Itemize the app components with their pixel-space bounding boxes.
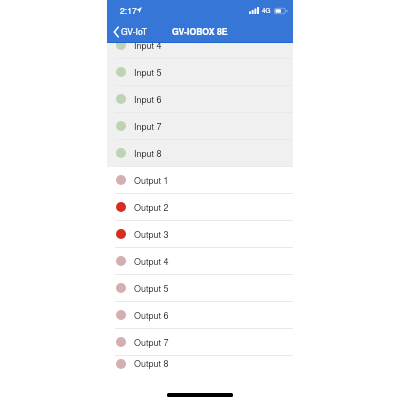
button[interactable]: Input 7 xyxy=(107,113,293,140)
button[interactable]: Output 5 xyxy=(107,275,293,302)
staticText: Output 7 xyxy=(134,336,169,349)
staticText: Output 6 xyxy=(134,309,169,322)
button[interactable]: Output 8 xyxy=(107,356,293,371)
staticText: Input 4 xyxy=(134,43,162,52)
staticText: Input 8 xyxy=(134,147,162,160)
button[interactable]: Output 2 xyxy=(107,194,293,221)
staticText: Input 5 xyxy=(134,66,162,79)
button[interactable]: GV-IoT xyxy=(110,23,151,39)
button[interactable]: Output 7 xyxy=(107,329,293,356)
staticText: Input 7 xyxy=(134,120,162,133)
button[interactable]: Output 6 xyxy=(107,302,293,329)
staticText: Input 6 xyxy=(134,93,162,106)
staticText: GV-IOBOX 8E xyxy=(172,25,228,37)
staticText: Output 4 xyxy=(134,255,169,268)
staticText: GV-IoT xyxy=(121,25,148,37)
staticText: 4G xyxy=(262,6,271,15)
staticText: Output 8 xyxy=(134,357,169,370)
button[interactable]: Input 4 xyxy=(107,43,293,59)
staticText: Output 1 xyxy=(134,174,169,187)
button[interactable]: Input 8 xyxy=(107,140,293,167)
staticText: 2:17 xyxy=(120,4,137,16)
staticText: Output 2 xyxy=(134,201,169,214)
button[interactable]: Output 3 xyxy=(107,221,293,248)
button[interactable]: Input 5 xyxy=(107,59,293,86)
staticText: Output 5 xyxy=(134,282,169,295)
button[interactable]: Output 1 xyxy=(107,167,293,194)
staticText: Output 3 xyxy=(134,228,169,241)
button[interactable]: Output 4 xyxy=(107,248,293,275)
button[interactable]: Input 6 xyxy=(107,86,293,113)
